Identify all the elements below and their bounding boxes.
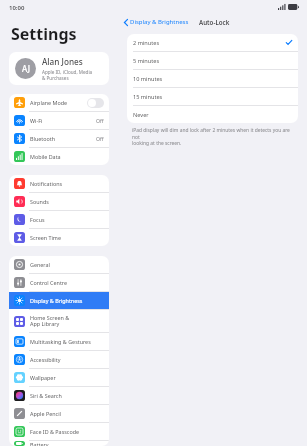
staticText: Multitasking & Gestures (30, 338, 104, 345)
staticText: Bluetooth (30, 135, 96, 142)
staticText: Off (96, 117, 104, 124)
staticText: Display & Brightness (130, 18, 189, 26)
staticText: Control Centre (30, 279, 104, 286)
button[interactable]: Notifications (9, 175, 109, 192)
button[interactable]: 2 minutes (127, 34, 298, 51)
button[interactable]: Mobile Data (9, 148, 109, 165)
staticText: Off (96, 135, 104, 142)
button[interactable]: Focus (9, 211, 109, 228)
button[interactable]: Display & Brightness (9, 292, 109, 309)
button[interactable]: 5 minutes (127, 52, 298, 69)
staticText: 10 minutes (133, 75, 292, 83)
staticText: Wi-Fi (30, 117, 96, 124)
staticText: Home Screen & App Library (30, 314, 104, 328)
staticText: Screen Time (30, 234, 104, 241)
staticText: Mobile Data (30, 153, 104, 160)
staticText: Battery (30, 441, 104, 446)
button[interactable]: Siri & Search (9, 387, 109, 404)
staticText: & Purchases (42, 75, 69, 81)
button[interactable]: Control Centre (9, 274, 109, 291)
button[interactable]: AJ (9, 52, 109, 85)
button[interactable]: Face ID & Passcode (9, 423, 109, 440)
staticText: Face ID & Passcode (30, 428, 104, 435)
button[interactable]: Bluetooth (9, 130, 109, 147)
button[interactable]: Never (127, 106, 298, 123)
button[interactable]: Screen Time (9, 229, 109, 246)
staticText: Siri & Search (30, 392, 104, 399)
button[interactable]: Wallpaper (9, 369, 109, 386)
staticText: 5 minutes (133, 57, 292, 65)
staticText: Alan Jones (42, 56, 83, 67)
staticText: 10:00 (9, 4, 25, 12)
staticText: Notifications (30, 180, 104, 187)
button[interactable]: Accessibility (9, 351, 109, 368)
staticText: Wallpaper (30, 374, 104, 381)
staticText: Display & Brightness (30, 297, 104, 304)
button[interactable]: Multitasking & Gestures (9, 333, 109, 350)
button[interactable]: 15 minutes (127, 88, 298, 105)
staticText: General (30, 261, 104, 268)
staticText: Focus (30, 216, 104, 223)
button[interactable]: Battery (9, 441, 109, 446)
button[interactable]: Back (122, 15, 191, 29)
staticText: Apple ID, iCloud, Media (42, 69, 93, 75)
button[interactable]: 10 minutes (127, 70, 298, 87)
staticText: AJ (22, 63, 30, 74)
staticText: 2 minutes (133, 39, 286, 47)
staticText: Accessibility (30, 356, 104, 363)
button[interactable]: Sounds (9, 193, 109, 210)
button[interactable]: Apple Pencil (9, 405, 109, 422)
staticText: iPad display will dim and lock after 2 m… (132, 127, 297, 146)
button[interactable]: Airplane Mode (9, 94, 109, 111)
staticText: Airplane Mode (30, 99, 87, 106)
staticText: Never (133, 111, 292, 119)
button[interactable]: General (9, 256, 109, 273)
staticText: Auto-Lock (199, 18, 230, 26)
staticText: 15 minutes (133, 93, 292, 101)
other: Back (124, 19, 128, 26)
button[interactable]: Wi-Fi (9, 112, 109, 129)
staticText: Apple Pencil (30, 410, 104, 417)
button[interactable]: Home Screen & App Library (9, 310, 109, 332)
staticText: Settings (11, 23, 77, 45)
staticText: Sounds (30, 198, 104, 205)
